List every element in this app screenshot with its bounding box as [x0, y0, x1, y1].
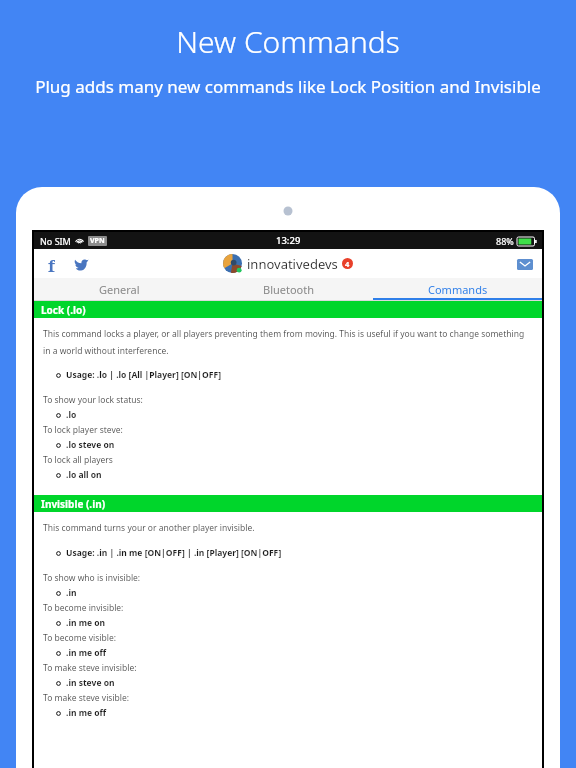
staticText: innovativedevs [247, 255, 338, 273]
button[interactable]: Commands [373, 278, 542, 300]
staticText: This command turns your or another playe… [43, 522, 255, 534]
staticText: .lo all on [66, 469, 102, 481]
staticText: Invisible (.in) [41, 497, 106, 511]
staticText: To make steve invisible: [43, 662, 137, 674]
staticText: To show your lock status: [43, 394, 143, 406]
staticText: Plug adds many new commands like Lock Po… [35, 75, 541, 98]
staticText: To become visible: [43, 632, 116, 644]
staticText: .lo [66, 409, 77, 421]
button[interactable]: Messages [514, 255, 536, 273]
button[interactable]: General [34, 278, 204, 300]
staticText: This command locks a player, or all play… [43, 328, 530, 356]
button[interactable]: Facebook [41, 254, 61, 274]
staticText: Bluetooth [263, 282, 315, 297]
staticText: Commands [428, 282, 488, 297]
staticText: f [48, 254, 55, 274]
button[interactable]: Twitter [71, 254, 91, 274]
button[interactable]: Bluetooth [204, 278, 373, 300]
staticText: No SIM [40, 235, 71, 247]
staticText: .in me off [66, 707, 107, 719]
staticText: .in me on [66, 617, 106, 629]
button[interactable]: innovativedevs [223, 254, 353, 273]
staticText: To lock player steve: [43, 424, 123, 436]
staticText: Usage: .lo | .lo [All |Player] [ON|OFF] [66, 369, 222, 381]
staticText: To show who is invisible: [43, 572, 141, 584]
staticText: 13:29 [276, 234, 301, 247]
staticText: .in steve on [66, 677, 115, 689]
staticText: 88% [496, 235, 514, 247]
staticText: To lock all players [43, 454, 113, 466]
staticText: To become invisible: [43, 602, 124, 614]
staticText: VPN [90, 236, 105, 246]
staticText: New Commands [176, 21, 400, 62]
staticText: .lo steve on [66, 439, 115, 451]
staticText: Usage: .in | .in me [ON|OFF] | .in [Play… [66, 547, 282, 559]
staticText: Lock (.lo) [41, 303, 86, 317]
staticText: 4 [345, 259, 350, 269]
staticText: General [99, 282, 140, 297]
staticText: To make steve visible: [43, 692, 130, 704]
staticText: .in me off [66, 647, 107, 659]
staticText: .in [66, 587, 77, 599]
